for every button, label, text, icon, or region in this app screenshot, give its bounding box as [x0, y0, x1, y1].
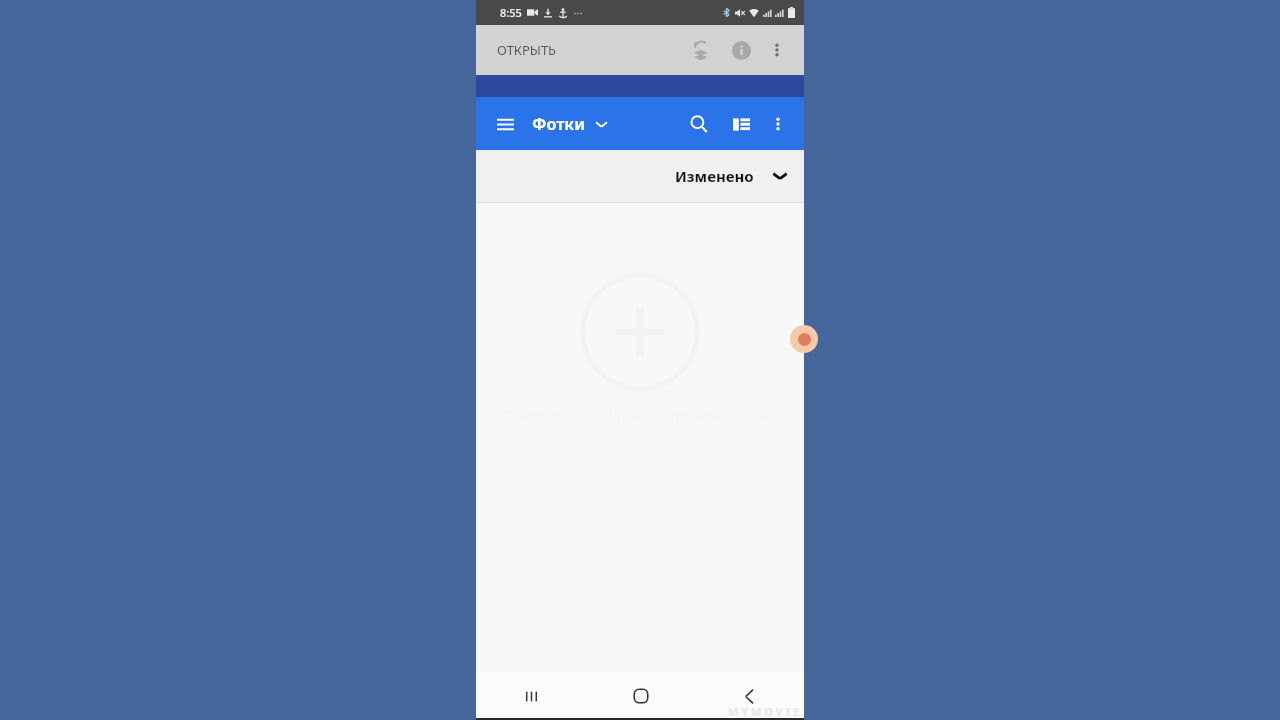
button[interactable]: Change view layout — [723, 106, 759, 142]
button[interactable]: More options — [760, 33, 794, 67]
button[interactable]: Изменено — [659, 158, 804, 194]
button[interactable]: Back — [695, 672, 804, 720]
button[interactable]: Info — [724, 33, 758, 67]
staticText: M Y M O V I E — [728, 704, 800, 719]
button[interactable]: Search — [681, 106, 717, 142]
staticText: ОТКРЫТЬ — [497, 41, 557, 59]
button[interactable]: Layers — [684, 33, 718, 67]
button[interactable]: Recent apps — [476, 672, 586, 720]
button[interactable]: Фотки — [529, 109, 611, 139]
staticText: Изменено — [675, 166, 754, 186]
button[interactable]: Home — [586, 672, 695, 720]
button[interactable]: More options — [761, 107, 795, 141]
staticText: Фотки — [532, 113, 585, 135]
staticText: 8:55 — [500, 5, 522, 20]
button[interactable]: Open navigation menu — [488, 107, 522, 141]
